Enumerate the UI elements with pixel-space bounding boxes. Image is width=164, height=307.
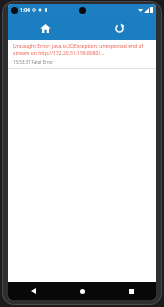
- button[interactable]: Uncaught Error: java.io.IOException: une…: [8, 40, 156, 68]
- button[interactable]: Refresh: [82, 16, 156, 40]
- button[interactable]: Back: [8, 282, 58, 300]
- staticText: 1:04: [20, 7, 30, 14]
- button[interactable]: Home: [8, 16, 82, 40]
- staticText: 15:53:37 Fatal Error: [13, 59, 54, 65]
- staticText: Uncaught Error: java.io.IOException: une…: [13, 43, 152, 56]
- button[interactable]: Recent apps: [107, 282, 156, 300]
- button[interactable]: Home: [58, 282, 107, 300]
